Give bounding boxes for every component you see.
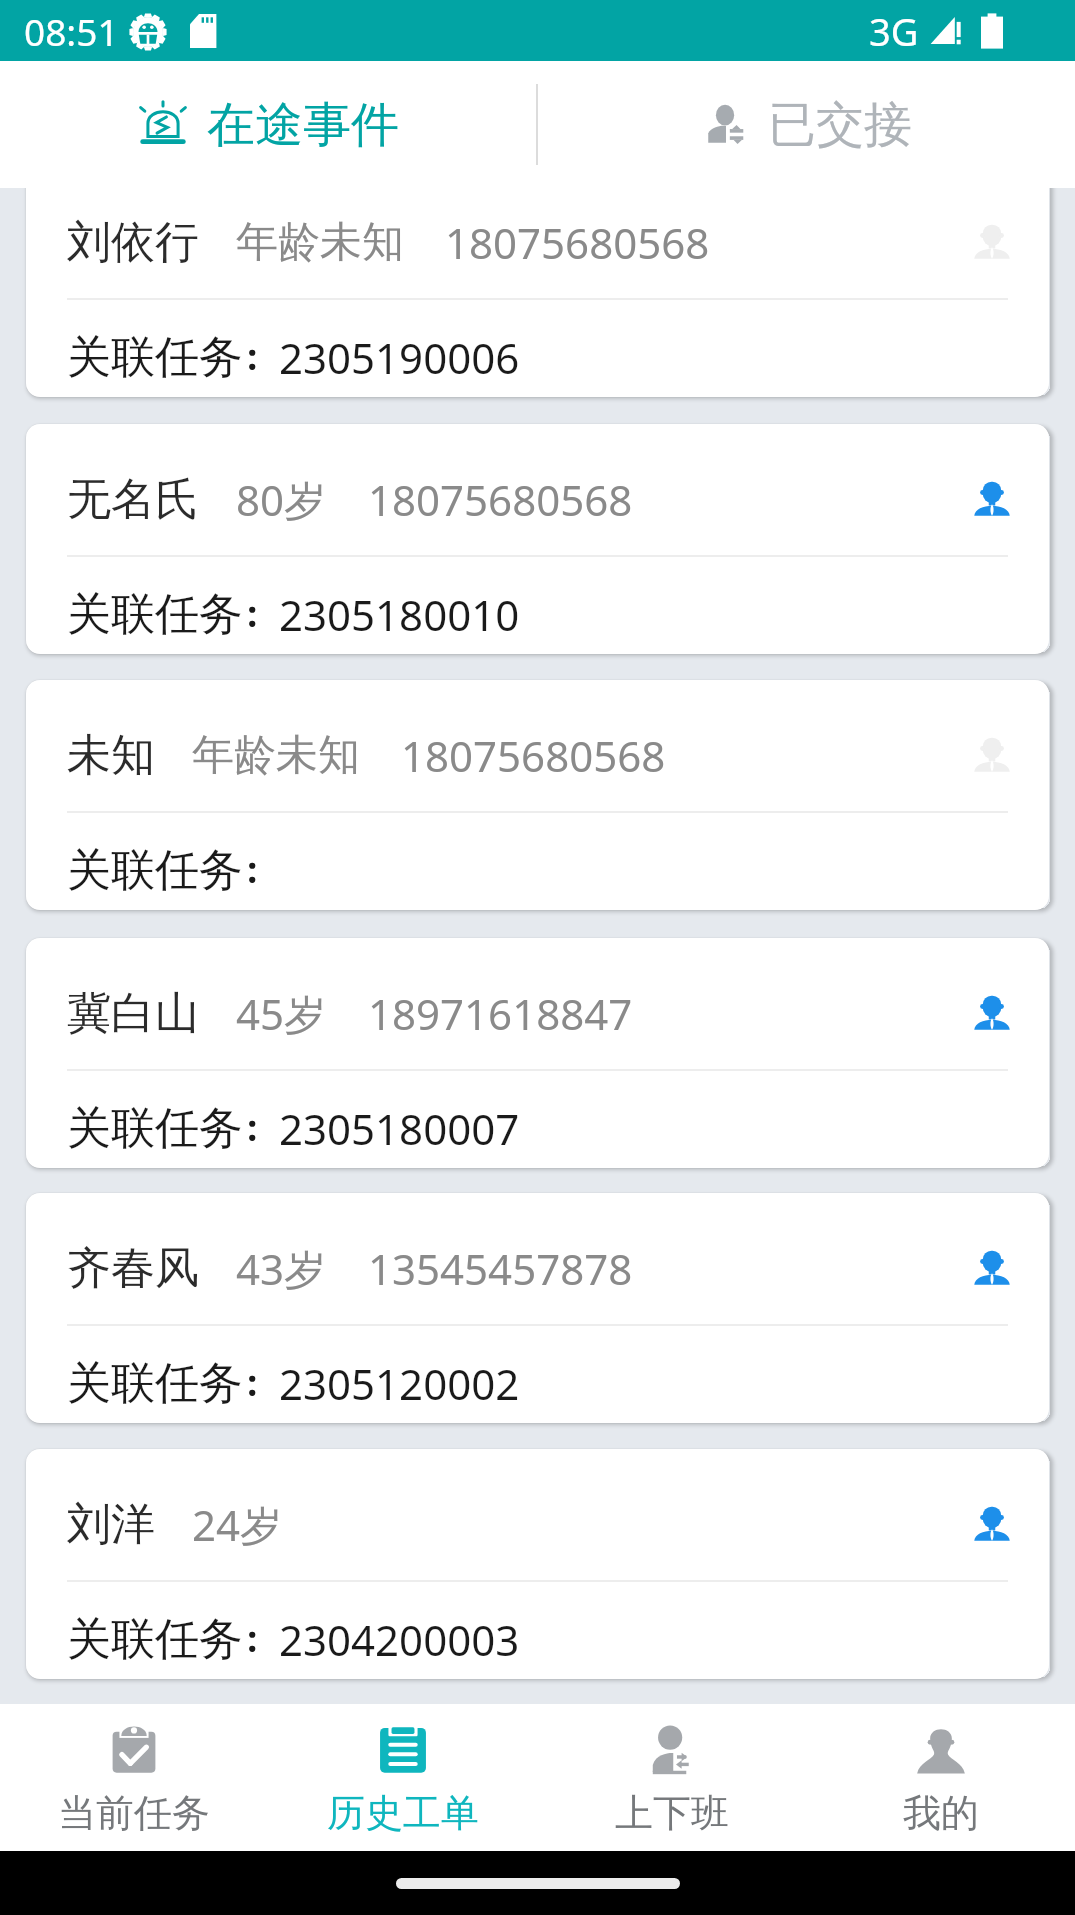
button[interactable]: Patient — [967, 213, 1017, 269]
staticText: 24岁 — [192, 1496, 283, 1553]
button[interactable]: 历史工单 — [268, 1704, 537, 1851]
staticText: 无名氏 — [67, 472, 199, 527]
button[interactable]: 无名氏 — [26, 424, 1049, 654]
button[interactable]: 冀白山 — [26, 938, 1049, 1168]
button[interactable]: 刘依行 — [26, 188, 1049, 397]
staticText: 18075680568 — [368, 471, 633, 528]
staticText: 关联任务 — [67, 1612, 243, 1667]
staticText: 我的 — [903, 1789, 979, 1837]
button[interactable]: Patient — [967, 1239, 1017, 1295]
staticText: 关联任务 — [67, 587, 243, 642]
staticText: 关联任务 — [67, 330, 243, 385]
staticText: 刘依行 — [67, 215, 199, 270]
staticText: 2304200003 — [279, 1611, 520, 1668]
staticText: 2305190006 — [279, 329, 520, 386]
staticText: 冀白山 — [67, 986, 199, 1041]
staticText: 已交接 — [768, 95, 912, 155]
staticText: 当前任务 — [58, 1789, 210, 1837]
staticText: 3G — [869, 5, 919, 57]
staticText: 18971618847 — [368, 985, 633, 1042]
staticText: 未知 — [67, 728, 155, 783]
staticText: 年龄未知 — [236, 216, 404, 269]
button[interactable]: 刘洋 — [26, 1449, 1049, 1679]
staticText: 08:51 — [24, 6, 119, 56]
button[interactable]: Patient — [967, 726, 1017, 782]
staticText: 43岁 — [236, 1240, 327, 1297]
staticText: 年龄未知 — [192, 729, 360, 782]
staticText: 关联任务 — [67, 1356, 243, 1411]
staticText: 80岁 — [236, 471, 327, 528]
staticText: 2305180007 — [279, 1100, 520, 1157]
staticText: 18075680568 — [401, 727, 666, 784]
staticText: 2305180010 — [279, 586, 520, 643]
staticText: 18075680568 — [445, 214, 710, 271]
button[interactable]: Patient — [967, 984, 1017, 1040]
staticText: 关联任务 — [67, 843, 243, 898]
staticText: 历史工单 — [327, 1789, 479, 1837]
staticText: 在途事件 — [207, 95, 399, 155]
button[interactable]: 我的 — [806, 1704, 1075, 1851]
staticText: 刘洋 — [67, 1497, 155, 1552]
button[interactable]: 上下班 — [537, 1704, 806, 1851]
staticText: 45岁 — [236, 985, 327, 1042]
staticText: 2305120002 — [279, 1355, 520, 1412]
button[interactable]: Patient — [967, 470, 1017, 526]
button[interactable]: 在途事件 — [0, 61, 536, 188]
button[interactable]: Patient — [967, 1495, 1017, 1551]
staticText: 关联任务 — [67, 1101, 243, 1156]
button[interactable]: 未知 — [26, 680, 1049, 910]
staticText: 上下班 — [615, 1789, 729, 1837]
button[interactable]: 已交接 — [538, 61, 1075, 188]
button[interactable]: 齐春风 — [26, 1193, 1049, 1423]
staticText: 13545457878 — [368, 1240, 633, 1297]
button[interactable]: 当前任务 — [0, 1704, 268, 1851]
staticText: 齐春风 — [67, 1241, 199, 1296]
